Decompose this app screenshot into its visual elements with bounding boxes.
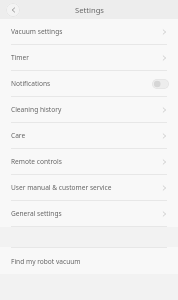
button[interactable]: General settings <box>0 201 178 226</box>
button[interactable]: Care <box>0 123 178 148</box>
staticText: Care <box>11 131 26 140</box>
staticText: Settings <box>75 5 104 15</box>
button[interactable]: Remote controls <box>0 149 178 174</box>
button[interactable]: Vacuum settings <box>0 19 178 44</box>
button[interactable]: Timer <box>0 45 178 70</box>
staticText: Cleaning history <box>11 105 62 114</box>
button[interactable]: Notifications <box>0 71 178 96</box>
staticText: Notifications <box>11 79 51 88</box>
staticText: User manual & customer service <box>11 183 112 192</box>
button[interactable]: Back <box>6 3 20 17</box>
staticText: Vacuum settings <box>11 27 63 36</box>
button[interactable]: Cleaning history <box>0 97 178 122</box>
staticText: Find my robot vacuum <box>11 257 81 266</box>
button[interactable]: Find my robot vacuum <box>0 248 178 274</box>
button[interactable]: User manual & customer service <box>0 175 178 200</box>
staticText: General settings <box>11 209 62 218</box>
staticText: Timer <box>11 53 29 62</box>
staticText: Remote controls <box>11 157 62 166</box>
button[interactable]: Notifications toggle <box>152 79 169 89</box>
